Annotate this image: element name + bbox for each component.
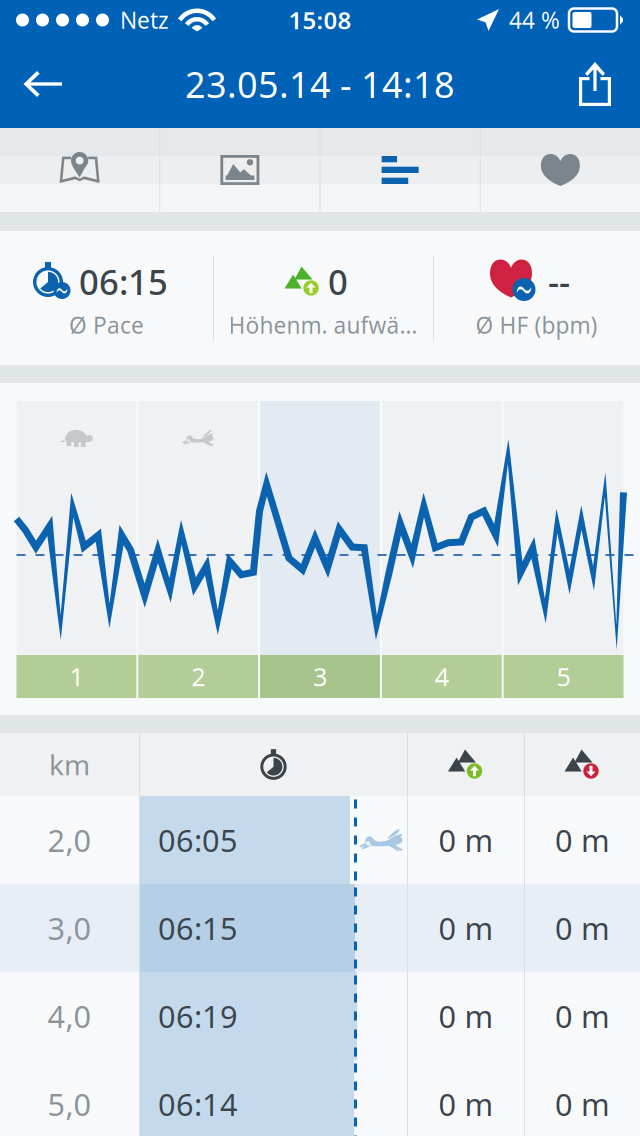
button[interactable]: Map xyxy=(0,128,159,212)
button[interactable]: Photos xyxy=(160,128,319,212)
staticText: 0 xyxy=(328,258,348,304)
button[interactable]: 2,0 xyxy=(0,796,640,884)
staticText: Ø Pace xyxy=(69,310,144,340)
staticText: 1 xyxy=(69,660,83,693)
staticText: 06:14 xyxy=(158,1084,238,1124)
staticText: 0 m xyxy=(555,996,610,1036)
staticText: 3 xyxy=(313,660,327,693)
staticText: 2,0 xyxy=(47,820,91,860)
staticText: 44 % xyxy=(509,5,560,35)
staticText: 0 m xyxy=(555,1084,610,1124)
button[interactable]: Statistics xyxy=(320,128,480,212)
button[interactable]: 3,0 xyxy=(0,884,640,972)
staticText: 06:05 xyxy=(158,820,238,860)
staticText: km xyxy=(49,746,90,783)
button[interactable]: 5,0 xyxy=(0,1060,640,1136)
staticText: Höhenm. aufwä… xyxy=(228,310,417,340)
staticText: 0 m xyxy=(555,908,610,948)
staticText: Ø HF (bpm) xyxy=(475,310,597,340)
staticText: 06:15 xyxy=(158,908,238,948)
staticText: 0 m xyxy=(438,1084,493,1124)
staticText: 23.05.14 - 14:18 xyxy=(185,60,455,108)
staticText: 0 m xyxy=(438,996,493,1036)
staticText: 4 xyxy=(435,660,449,693)
button[interactable]: 4,0 xyxy=(0,972,640,1060)
staticText: 4,0 xyxy=(47,996,91,1036)
staticText: 06:19 xyxy=(158,996,238,1036)
staticText: 5 xyxy=(557,660,571,693)
button[interactable]: Heart rate xyxy=(481,128,640,212)
staticText: 06:15 xyxy=(79,258,168,304)
staticText: 15:08 xyxy=(288,4,351,36)
staticText: 3,0 xyxy=(47,908,91,948)
button[interactable]: Share xyxy=(550,40,640,128)
staticText: 2 xyxy=(191,660,205,693)
staticText: Netz xyxy=(120,5,169,35)
staticText: -- xyxy=(548,258,570,304)
button[interactable]: Back xyxy=(0,40,86,128)
staticText: 0 m xyxy=(438,820,493,860)
staticText: 5,0 xyxy=(47,1084,91,1124)
staticText: 0 m xyxy=(438,908,493,948)
staticText: 0 m xyxy=(555,820,610,860)
